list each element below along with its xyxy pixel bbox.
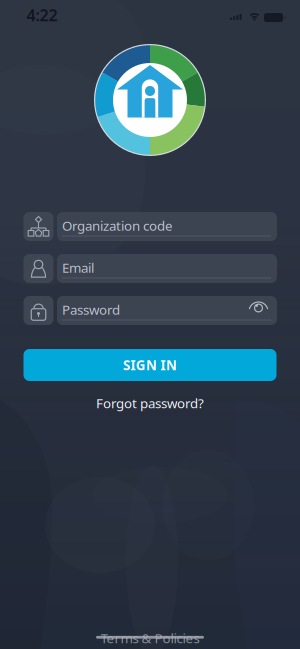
button[interactable]: [23, 212, 277, 241]
staticText: Forgot password?: [96, 394, 204, 412]
staticText: Email: [62, 259, 94, 276]
staticText: Organization code: [62, 217, 173, 234]
button[interactable]: Show password: [245, 298, 271, 318]
staticText: 4:22: [26, 4, 57, 26]
staticText: Terms & Policies: [100, 629, 199, 647]
staticText: Password: [62, 301, 120, 318]
button[interactable]: [23, 296, 277, 325]
button[interactable]: SIGN IN: [23, 349, 276, 381]
button[interactable]: Forgot password?: [65, 393, 235, 413]
button[interactable]: Terms & Policies: [80, 630, 220, 646]
staticText: SIGN IN: [123, 356, 177, 374]
button[interactable]: [23, 254, 277, 283]
